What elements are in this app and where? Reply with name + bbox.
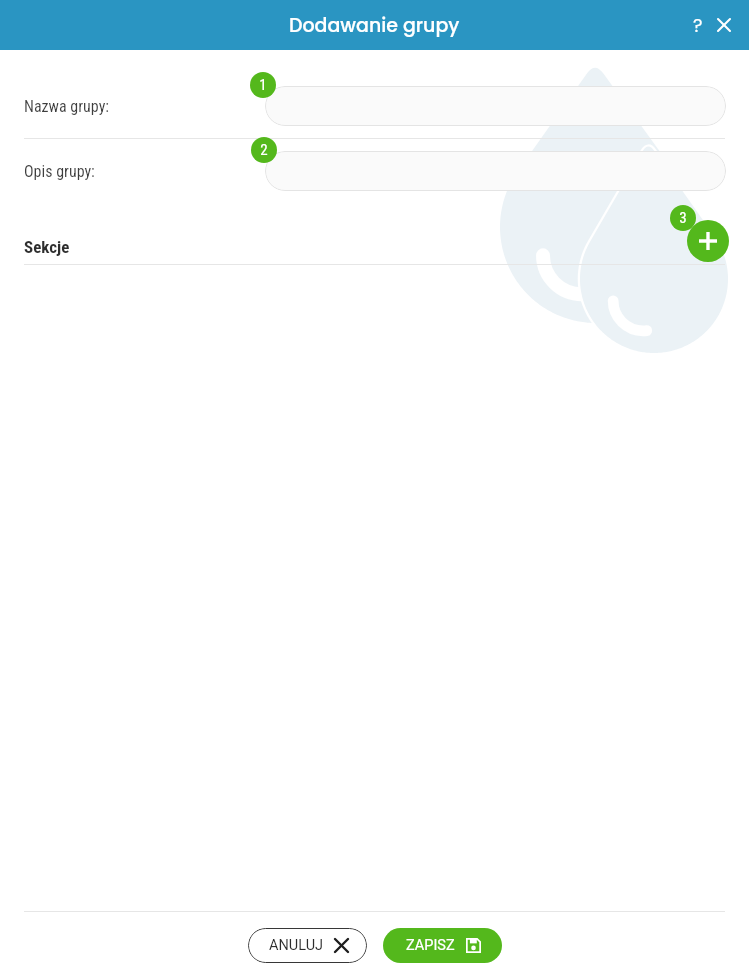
button[interactable]: Close — [705, 0, 743, 50]
staticText: ANULUJ — [269, 937, 324, 954]
staticText: 3 — [679, 209, 687, 227]
staticText: ? — [693, 13, 703, 38]
button[interactable] — [265, 86, 726, 126]
staticText: Opis grupy: — [24, 162, 95, 181]
staticText: ZAPISZ — [406, 937, 455, 954]
button[interactable]: ZAPISZ — [383, 928, 502, 963]
button[interactable]: Add section — [687, 220, 729, 262]
staticText: Dodawanie grupy — [289, 12, 460, 39]
staticText: 1 — [259, 76, 267, 94]
button[interactable]: ANULUJ — [248, 928, 367, 963]
button[interactable] — [265, 151, 726, 191]
button[interactable]: Help — [691, 0, 705, 50]
staticText: Sekcje — [24, 237, 70, 257]
staticText: Nazwa grupy: — [24, 97, 110, 116]
staticText: 2 — [260, 141, 268, 159]
